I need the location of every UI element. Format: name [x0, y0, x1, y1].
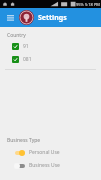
button[interactable]: App logo [19, 10, 34, 25]
staticText: Personal Use [29, 149, 60, 156]
button[interactable]: Personal Use [0, 147, 101, 158]
button[interactable]: 081 [0, 54, 101, 65]
staticText: Country [7, 32, 26, 39]
staticText: 081 [23, 56, 32, 63]
staticText: 95% 5:18 PM [76, 2, 100, 7]
button[interactable]: Business Use [0, 160, 101, 171]
staticText: 91 [23, 43, 29, 50]
button[interactable]: Open navigation menu [5, 12, 16, 23]
staticText: Business Type [7, 137, 41, 144]
staticText: Business Use [29, 162, 60, 169]
button[interactable]: 91 [0, 41, 101, 52]
staticText: Settings [38, 13, 67, 23]
